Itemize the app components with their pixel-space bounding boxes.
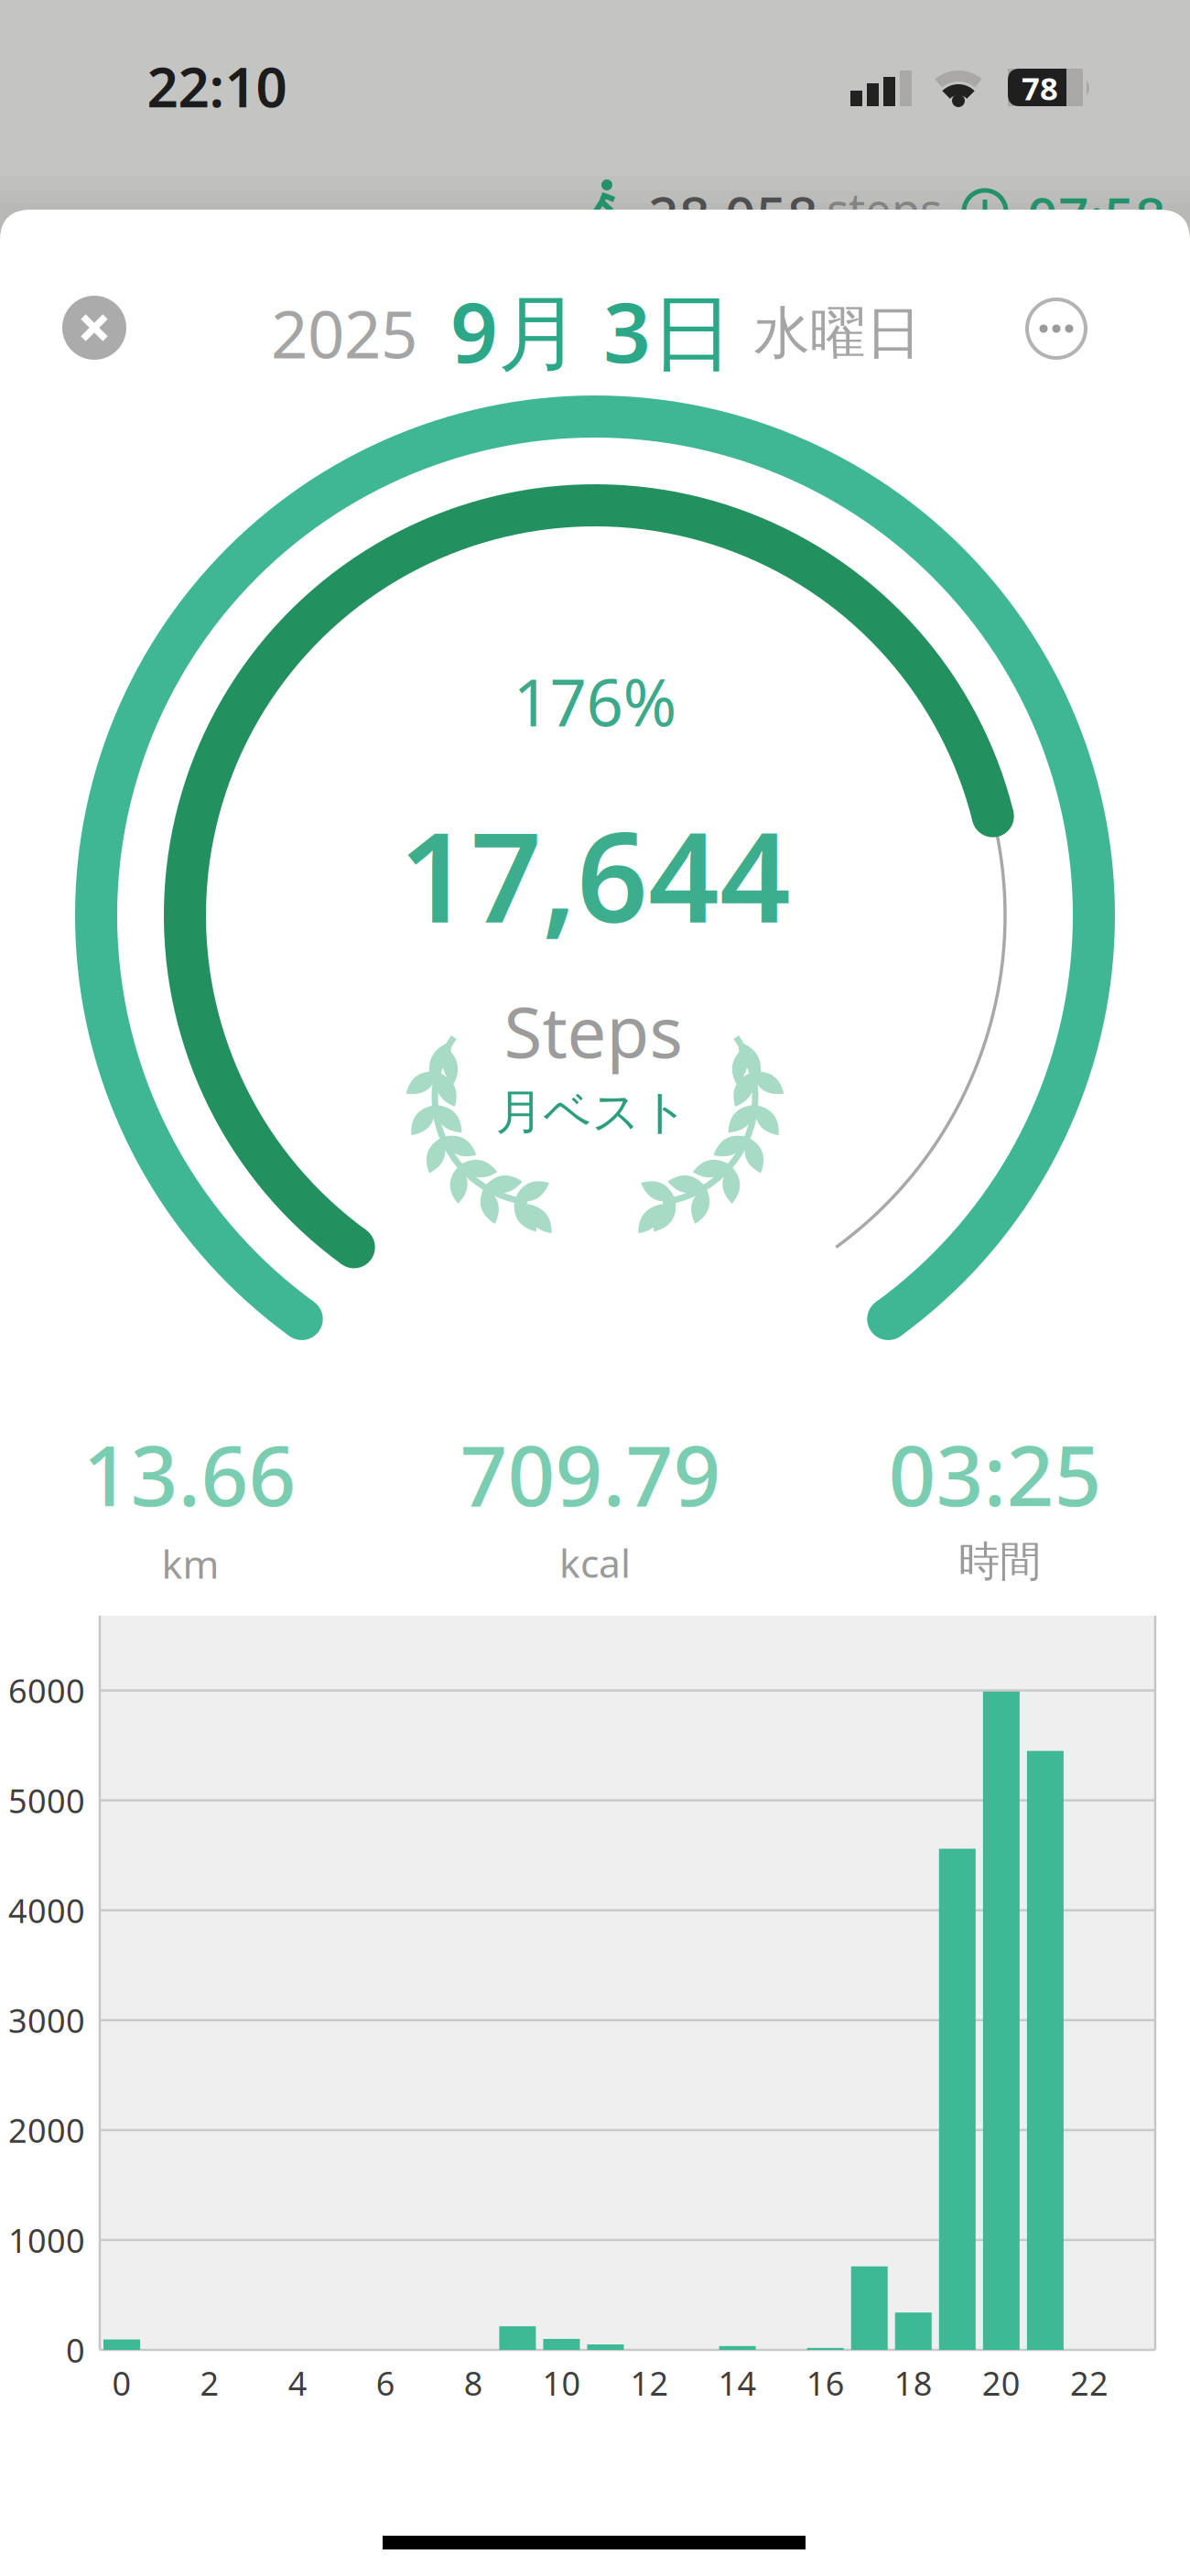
staticText: 13.66 xyxy=(83,1419,296,1529)
staticText: km xyxy=(162,1538,219,1590)
staticText: 176% xyxy=(513,658,677,744)
staticText: 時間 xyxy=(958,1536,1041,1587)
staticText: 28,058 xyxy=(648,179,818,251)
staticText: 2000 xyxy=(8,2108,85,2152)
staticText: 78 xyxy=(1022,67,1058,109)
staticText: kcal xyxy=(559,1537,631,1589)
button[interactable]: More options xyxy=(1026,298,1087,359)
staticText: 2025 xyxy=(271,290,417,376)
button[interactable]: Close xyxy=(64,298,124,358)
staticText: 0 xyxy=(112,2361,131,2405)
staticText: 4000 xyxy=(8,1888,85,1932)
staticText: 14 xyxy=(718,2361,757,2405)
staticText: Steps xyxy=(504,985,682,1077)
staticText: 4 xyxy=(288,2361,307,2405)
staticText: 2 xyxy=(200,2361,219,2405)
staticText: 12 xyxy=(630,2361,669,2405)
staticText: 03:25 xyxy=(888,1419,1102,1529)
staticText: steps xyxy=(827,178,942,240)
staticText: 07:58 xyxy=(1027,180,1166,252)
staticText: 22:10 xyxy=(147,50,287,123)
staticText: 16 xyxy=(806,2361,845,2405)
staticText: 709.79 xyxy=(460,1419,721,1529)
staticText: 水曜日 xyxy=(754,299,921,368)
staticText: 3000 xyxy=(8,1998,85,2042)
staticText: 20 xyxy=(982,2361,1021,2405)
staticText: 月ベスト xyxy=(496,1083,689,1142)
staticText: 6000 xyxy=(8,1669,85,1712)
staticText: 9月 3日 xyxy=(450,275,734,386)
staticText: 8 xyxy=(464,2361,483,2405)
staticText: 22 xyxy=(1070,2361,1108,2405)
staticText: 10 xyxy=(542,2361,581,2405)
staticText: 0 xyxy=(66,2328,85,2372)
staticText: 6 xyxy=(376,2361,395,2405)
staticText: 18 xyxy=(894,2361,933,2405)
staticText: 1000 xyxy=(8,2218,85,2262)
staticText: 5000 xyxy=(8,1778,85,1822)
staticText: 17,644 xyxy=(399,792,791,957)
